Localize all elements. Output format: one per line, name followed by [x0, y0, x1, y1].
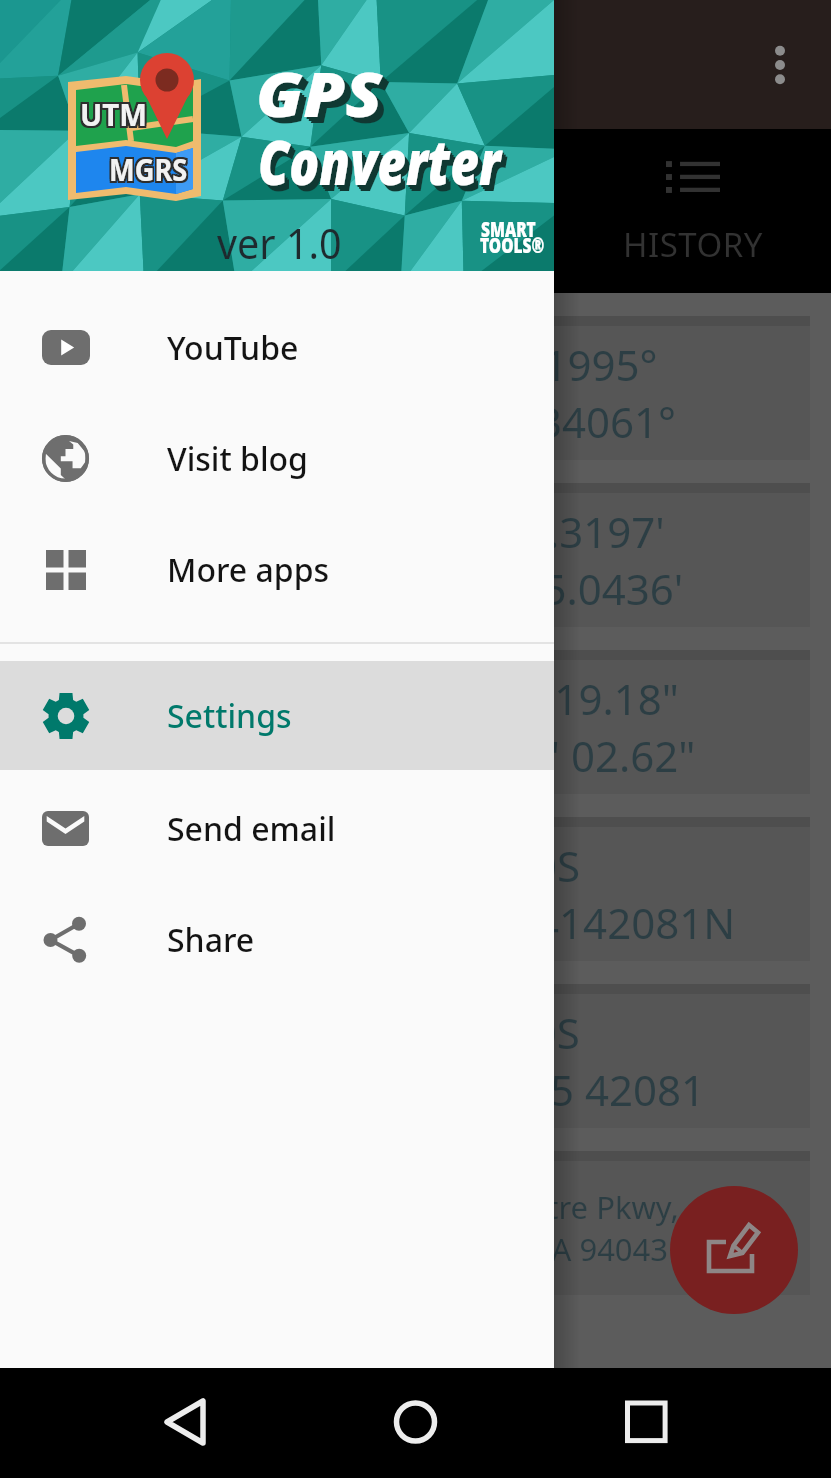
staticText: UTM — [82, 93, 149, 135]
staticText: UTM — [78, 93, 145, 135]
staticText: GPS — [258, 53, 385, 137]
button[interactable]: Visit blog — [0, 403, 554, 514]
staticText: GPS — [260, 55, 387, 139]
staticText: MGRS — [107, 148, 186, 190]
button[interactable]: Back — [145, 1382, 225, 1462]
staticText: MGRS 10S — [380, 1004, 580, 1061]
button[interactable]: Settings — [0, 661, 554, 770]
staticText: GPS — [262, 57, 389, 141]
staticText: Send email — [167, 807, 336, 851]
button[interactable]: Home — [375, 1382, 455, 1462]
staticText: Visit blog — [167, 437, 308, 481]
staticText: UTM — [80, 93, 147, 135]
staticText: HISTORY — [623, 222, 763, 267]
staticText: Converter — [261, 123, 504, 207]
staticText: UTM — [78, 91, 145, 133]
button[interactable]: YouTube — [0, 292, 554, 403]
staticText: UTM — [80, 95, 147, 137]
button[interactable]: 37° 25.3197' — [0, 493, 810, 627]
button[interactable]: Recents — [606, 1382, 686, 1462]
staticText: MGRS — [109, 146, 188, 188]
staticText: MGRS — [109, 148, 188, 190]
button[interactable]: Send email — [0, 773, 554, 884]
button[interactable]: UTM 10S — [0, 827, 810, 961]
staticText: MGRS — [111, 146, 190, 188]
staticText: Converter — [260, 121, 503, 205]
staticText: More apps — [167, 548, 330, 592]
staticText: TOOLS® — [480, 230, 545, 259]
staticText: 585142 4142081N — [380, 894, 736, 951]
staticText: -122° 5.0436' — [428, 560, 684, 617]
button[interactable]: 37° 25' 19.18" — [0, 660, 810, 794]
button[interactable]: MGRS 10S — [0, 994, 810, 1128]
staticText: -122.0834061° — [393, 393, 676, 450]
staticText: MGRS — [109, 150, 188, 192]
button[interactable]: Share — [0, 884, 554, 995]
staticText: Share — [167, 918, 255, 962]
staticText: MGRS — [107, 150, 186, 192]
staticText: 37° 25' 19.18" — [409, 670, 679, 727]
button[interactable]: More apps — [0, 514, 554, 625]
staticText: UTM — [82, 91, 149, 133]
staticText: Converter — [258, 119, 501, 203]
staticText: 1600 Amphitheatre Pkwy, — [308, 1186, 679, 1228]
staticText: MGRS — [111, 150, 190, 192]
staticText: MGRS — [107, 146, 186, 188]
staticText: ver 1.0 — [217, 214, 342, 271]
staticText: GPS — [256, 51, 382, 135]
button[interactable]: 37.4221995° — [0, 326, 810, 460]
staticText: UTM — [80, 91, 147, 133]
button[interactable]: More options — [748, 33, 812, 97]
staticText: Mountain View, CA 94043 — [300, 1228, 669, 1270]
staticText: UTM — [82, 95, 149, 137]
button[interactable]: 1600 Amphitheatre Pkwy, — [0, 1161, 810, 1295]
button[interactable]: New conversion — [670, 1186, 798, 1314]
staticText: Settings — [167, 694, 292, 738]
staticText: MGRS — [111, 148, 190, 190]
staticText: -122° 5' 02.62" — [412, 727, 696, 784]
staticText: Converter — [263, 125, 506, 209]
staticText: 37.4221995° — [412, 336, 658, 393]
staticText: EG 58515 42081 — [389, 1061, 706, 1118]
staticText: YouTube — [167, 326, 299, 370]
staticText: UTM — [78, 95, 145, 137]
staticText: SMART — [481, 214, 536, 243]
button[interactable]: HISTORY — [554, 129, 831, 293]
staticText: 37° 25.3197' — [423, 503, 665, 560]
staticText: UTM 10S — [406, 837, 581, 894]
